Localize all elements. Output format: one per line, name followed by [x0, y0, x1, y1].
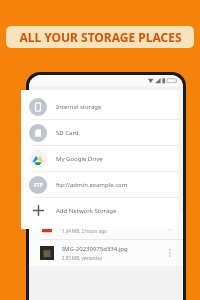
staticText: 2.83 MB, yesterday [62, 255, 102, 261]
button[interactable]: Add Network Storage [21, 198, 179, 223]
staticText: SD Card [56, 129, 79, 137]
button[interactable]: IMG-20230975d334.jpg [29, 240, 183, 266]
staticText: FTP [34, 182, 43, 189]
button[interactable]: Concert-Ticket.pdf [29, 213, 183, 239]
staticText: ftp://admin.example.com [56, 181, 128, 189]
staticText: Add Network Storage [56, 207, 117, 215]
button[interactable]: More options [163, 246, 177, 260]
button[interactable]: More options [163, 219, 177, 233]
button[interactable]: FTP [21, 172, 179, 197]
button[interactable]: My Google Drive [21, 146, 179, 171]
staticText: My Google Drive [56, 155, 103, 163]
staticText: IMG-20230975d334.jpg [62, 245, 128, 253]
button[interactable]: SD Card [21, 120, 179, 145]
staticText: Internal storage [56, 103, 102, 111]
staticText: 1.04 MB, 2 hours ago [62, 228, 107, 234]
button[interactable]: Internal storage [21, 94, 179, 119]
staticText: ALL YOUR STORAGE PLACES [19, 29, 182, 45]
